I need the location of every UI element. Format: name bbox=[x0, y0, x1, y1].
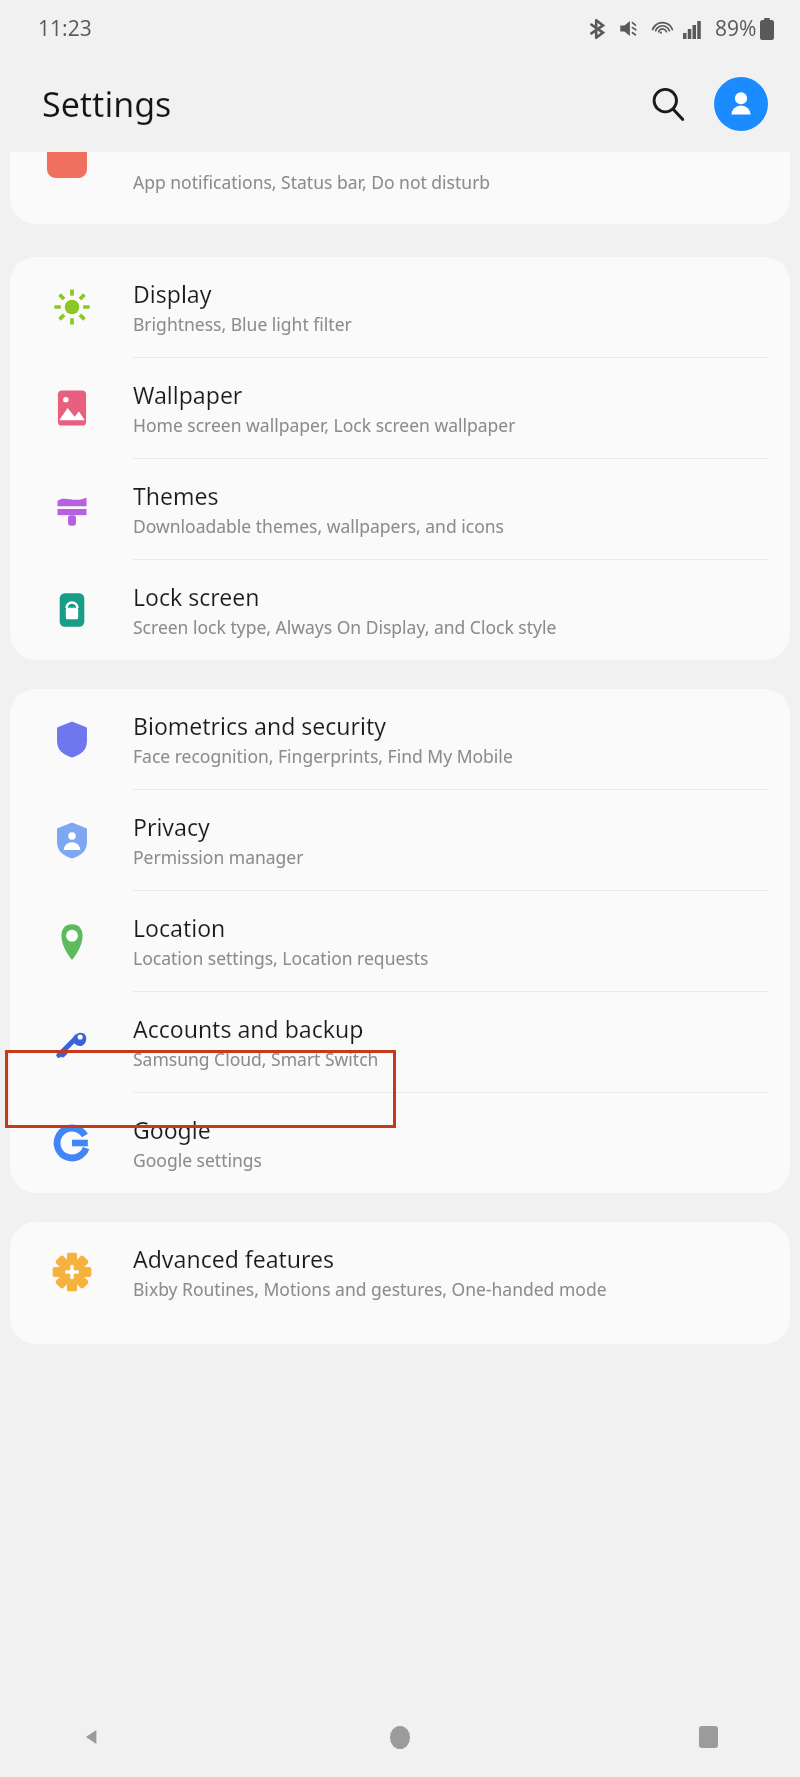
staticText: Biometrics and security bbox=[133, 710, 387, 741]
button[interactable]: Account bbox=[714, 77, 768, 131]
staticText: Privacy bbox=[133, 811, 210, 842]
staticText: Downloadable themes, wallpapers, and ico… bbox=[133, 514, 504, 538]
staticText: Accounts and backup bbox=[133, 1013, 364, 1044]
staticText: Brightness, Blue light filter bbox=[133, 312, 352, 336]
staticText: 89% bbox=[715, 14, 757, 43]
staticText: Screen lock type, Always On Display, and… bbox=[133, 615, 557, 639]
button[interactable]: Advanced features bbox=[10, 1222, 790, 1322]
staticText: Bixby Routines, Motions and gestures, On… bbox=[133, 1277, 607, 1301]
staticText: Themes bbox=[133, 480, 219, 511]
button[interactable]: Back bbox=[60, 1705, 124, 1769]
staticText: Google settings bbox=[133, 1148, 262, 1172]
staticText: Wallpaper bbox=[133, 379, 243, 410]
staticText: 11:23 bbox=[38, 14, 92, 43]
staticText: Face recognition, Fingerprints, Find My … bbox=[133, 744, 513, 768]
button[interactable]: Home bbox=[368, 1705, 432, 1769]
button[interactable]: Google bbox=[10, 1093, 790, 1193]
button[interactable]: App notifications, Status bar, Do not di… bbox=[10, 152, 790, 224]
button[interactable]: Advanced features bbox=[10, 1222, 790, 1344]
staticText: Location settings, Location requests bbox=[133, 946, 429, 970]
button[interactable]: Location bbox=[10, 891, 790, 991]
staticText: Settings bbox=[42, 81, 172, 127]
button[interactable]: Accounts and backup bbox=[10, 992, 790, 1092]
staticText: Samsung Cloud, Smart Switch bbox=[133, 1047, 379, 1071]
staticText: Google bbox=[133, 1114, 211, 1145]
button[interactable]: Wallpaper bbox=[10, 358, 790, 458]
staticText: Lock screen bbox=[133, 581, 260, 612]
staticText: Home screen wallpaper, Lock screen wallp… bbox=[133, 413, 516, 437]
staticText: Advanced features bbox=[133, 1243, 335, 1274]
button[interactable]: Lock screen bbox=[10, 560, 790, 660]
button[interactable]: Search bbox=[640, 76, 696, 132]
button[interactable]: Recents bbox=[676, 1705, 740, 1769]
staticText: Display bbox=[133, 278, 212, 309]
staticText: App notifications, Status bar, Do not di… bbox=[133, 170, 491, 194]
button[interactable]: Privacy bbox=[10, 790, 790, 890]
button[interactable]: Display bbox=[10, 257, 790, 357]
button[interactable]: Themes bbox=[10, 459, 790, 559]
button[interactable]: Biometrics and security bbox=[10, 689, 790, 789]
staticText: Permission manager bbox=[133, 845, 304, 869]
staticText: Location bbox=[133, 912, 226, 943]
